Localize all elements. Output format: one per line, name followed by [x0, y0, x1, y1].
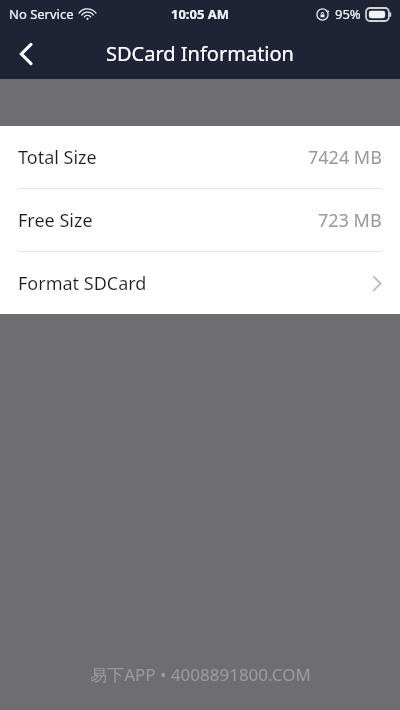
button[interactable]: Back — [0, 28, 52, 79]
button[interactable]: Free Size — [0, 189, 400, 251]
staticText: 易下APP • 4008891800.COM — [90, 663, 311, 686]
button[interactable]: Total Size — [0, 126, 400, 188]
staticText: No Service — [9, 5, 74, 23]
staticText: Free Size — [18, 208, 93, 233]
staticText: Format SDCard — [18, 271, 147, 296]
staticText: 10:05 AM — [171, 5, 230, 23]
button[interactable]: Format SDCard — [0, 252, 400, 314]
staticText: 723 MB — [318, 208, 382, 233]
staticText: 7424 MB — [308, 145, 382, 170]
staticText: SDCard Information — [106, 40, 294, 67]
staticText: 95% — [335, 5, 361, 23]
staticText: Total Size — [18, 145, 97, 170]
